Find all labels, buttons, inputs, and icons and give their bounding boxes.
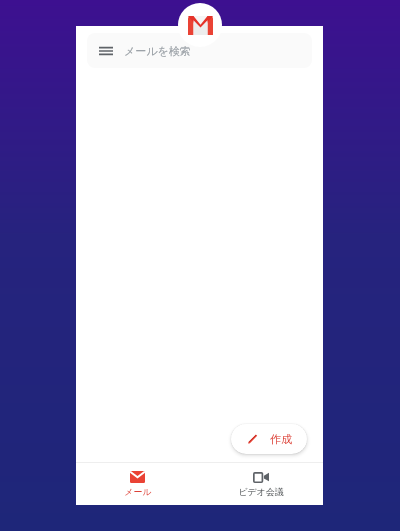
staticText: メールを検索 xyxy=(124,44,191,58)
staticText: 作成 xyxy=(270,432,292,446)
staticText: ビデオ会議 xyxy=(238,486,284,497)
other: Video meeting xyxy=(253,471,269,483)
button[interactable]: Video meeting xyxy=(199,463,323,505)
button[interactable]: Gmail xyxy=(178,3,222,47)
other: Mail xyxy=(130,471,145,483)
button[interactable]: 作成 xyxy=(231,424,307,454)
button[interactable]: Mail xyxy=(76,463,199,505)
button[interactable]: Open navigation menu xyxy=(87,33,312,68)
staticText: メール xyxy=(124,486,152,497)
other: Open navigation menu xyxy=(99,44,113,58)
